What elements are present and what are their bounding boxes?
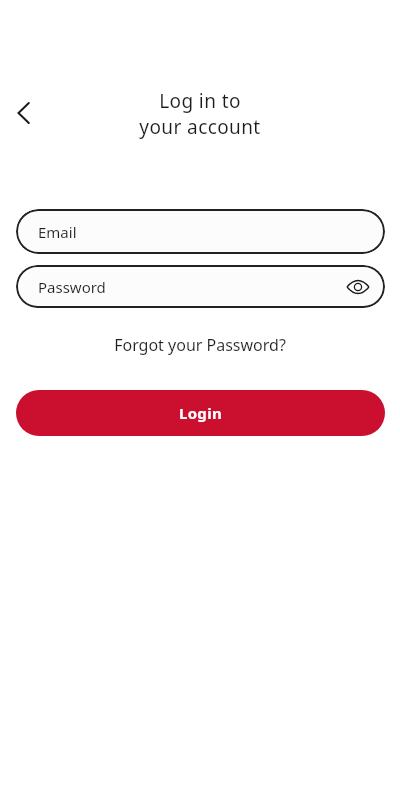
staticText: Email: [38, 222, 77, 242]
staticText: Log in to your account: [0, 88, 400, 139]
staticText: Password: [38, 277, 106, 297]
staticText: Login: [179, 403, 222, 423]
staticText: Forgot your Password?: [0, 334, 400, 356]
